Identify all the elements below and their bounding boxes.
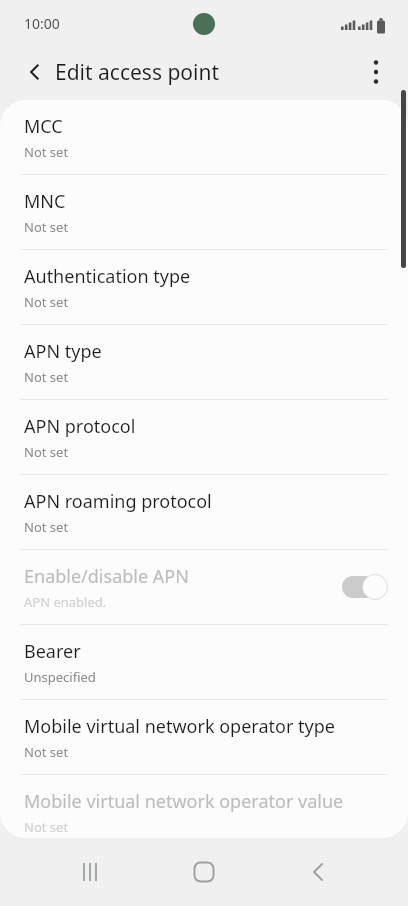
button[interactable]: Enable or disable APN bbox=[338, 571, 390, 603]
staticText: Unspecified bbox=[24, 668, 96, 686]
button[interactable]: More options bbox=[356, 52, 396, 92]
staticText: 10:00 bbox=[24, 14, 60, 33]
staticText: Mobile virtual network operator type bbox=[24, 714, 335, 739]
button[interactable]: MNC bbox=[0, 175, 408, 249]
staticText: APN enabled. bbox=[24, 593, 107, 611]
staticText: Not set bbox=[24, 368, 69, 386]
button[interactable]: Enable/disable APN bbox=[0, 550, 408, 624]
staticText: Edit access point bbox=[55, 58, 220, 87]
button[interactable]: Bearer bbox=[0, 625, 408, 699]
staticText: Authentication type bbox=[24, 264, 191, 289]
staticText: Mobile virtual network operator value bbox=[24, 789, 344, 814]
button[interactable]: Back bbox=[14, 52, 54, 92]
staticText: Not set bbox=[24, 293, 69, 311]
button[interactable]: Recent apps bbox=[66, 848, 114, 896]
button[interactable]: Home bbox=[180, 848, 228, 896]
button[interactable]: MCC bbox=[0, 100, 408, 174]
staticText: APN roaming protocol bbox=[24, 489, 212, 514]
staticText: MCC bbox=[24, 114, 63, 139]
staticText: Not set bbox=[24, 743, 69, 761]
staticText: APN type bbox=[24, 339, 102, 364]
staticText: Not set bbox=[24, 143, 69, 161]
button[interactable]: Mobile virtual network operator value bbox=[0, 775, 408, 838]
button[interactable]: APN protocol bbox=[0, 400, 408, 474]
button[interactable]: APN roaming protocol bbox=[0, 475, 408, 549]
staticText: MNC bbox=[24, 189, 66, 214]
button[interactable]: Authentication type bbox=[0, 250, 408, 324]
staticText: Bearer bbox=[24, 639, 81, 664]
button[interactable]: APN type bbox=[0, 325, 408, 399]
staticText: Not set bbox=[24, 218, 69, 236]
staticText: Not set bbox=[24, 818, 69, 836]
button[interactable]: Back bbox=[294, 848, 342, 896]
staticText: Enable/disable APN bbox=[24, 564, 189, 589]
staticText: APN protocol bbox=[24, 414, 136, 439]
button[interactable]: Mobile virtual network operator type bbox=[0, 700, 408, 774]
staticText: Not set bbox=[24, 443, 69, 461]
staticText: Not set bbox=[24, 518, 69, 536]
